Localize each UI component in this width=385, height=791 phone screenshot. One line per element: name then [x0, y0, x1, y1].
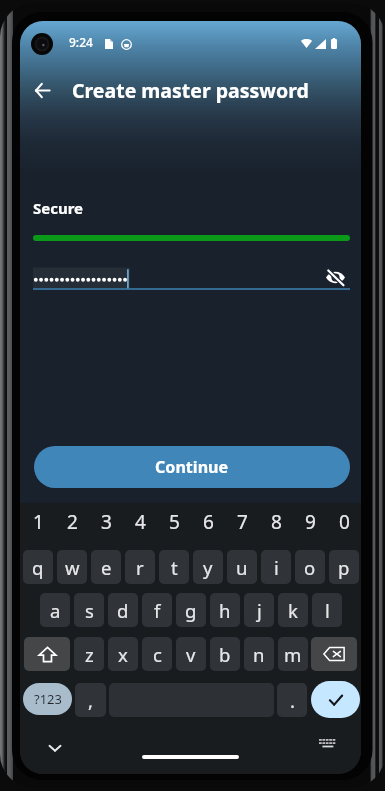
- staticText: p: [338, 555, 350, 580]
- button[interactable]: r: [125, 550, 155, 584]
- button[interactable]: 3: [91, 506, 121, 538]
- button[interactable]: j: [244, 593, 274, 627]
- staticText: q: [32, 555, 44, 580]
- staticText: 4: [135, 509, 146, 535]
- staticText: k: [288, 598, 298, 623]
- staticText: Continue: [155, 456, 229, 478]
- staticText: u: [236, 555, 248, 580]
- button[interactable]: ,: [75, 683, 106, 717]
- staticText: f: [154, 598, 161, 623]
- button[interactable]: 5: [159, 506, 189, 538]
- button[interactable]: Show password: [321, 264, 349, 290]
- staticText: m: [284, 642, 302, 667]
- staticText: 6: [203, 509, 214, 535]
- staticText: Create master password: [72, 77, 309, 104]
- staticText: 8: [271, 509, 282, 535]
- staticText: 3: [101, 509, 112, 535]
- staticText: g: [185, 598, 197, 623]
- staticText: v: [186, 642, 196, 667]
- staticText: 1: [33, 509, 44, 535]
- staticText: z: [85, 642, 94, 667]
- staticText: o: [304, 555, 316, 580]
- button[interactable]: Switch keyboard: [314, 734, 340, 760]
- staticText: i: [274, 555, 279, 580]
- staticText: s: [85, 598, 94, 623]
- button[interactable]: l: [312, 593, 342, 627]
- button[interactable]: 6: [193, 506, 223, 538]
- button[interactable]: 9: [295, 506, 325, 538]
- button[interactable]: d: [108, 593, 138, 627]
- button[interactable]: ?123: [23, 683, 72, 715]
- button[interactable]: Enter: [311, 681, 360, 718]
- button[interactable]: [24, 637, 70, 671]
- staticText: b: [219, 642, 231, 667]
- button[interactable]: q: [23, 550, 53, 584]
- button[interactable]: 8: [261, 506, 291, 538]
- button[interactable]: g: [176, 593, 206, 627]
- staticText: w: [65, 555, 80, 580]
- button[interactable]: u: [227, 550, 257, 584]
- staticText: e: [101, 555, 112, 580]
- button[interactable]: p: [329, 550, 359, 584]
- staticText: Secure: [33, 198, 84, 218]
- staticText: r: [136, 555, 144, 580]
- staticText: h: [219, 598, 231, 623]
- staticText: 9: [305, 509, 316, 535]
- button[interactable]: z: [74, 637, 104, 671]
- staticText: y: [203, 555, 213, 580]
- button[interactable]: 1: [23, 506, 53, 538]
- button[interactable]: i: [261, 550, 291, 584]
- button[interactable]: Back: [24, 72, 60, 108]
- staticText: ,: [88, 688, 93, 713]
- staticText: n: [253, 642, 265, 667]
- staticText: 0: [339, 509, 350, 535]
- button[interactable]: Continue: [34, 446, 350, 488]
- staticText: 9:24: [69, 34, 93, 50]
- button[interactable]: 7: [227, 506, 257, 538]
- button[interactable]: Hide keyboard: [43, 736, 67, 760]
- button[interactable]: v: [176, 637, 206, 671]
- button[interactable]: y: [193, 550, 223, 584]
- staticText: 5: [169, 509, 180, 535]
- staticText: c: [153, 642, 162, 667]
- staticText: 7: [237, 509, 248, 535]
- button[interactable]: 2: [57, 506, 87, 538]
- staticText: ?123: [34, 690, 62, 708]
- staticText: d: [117, 598, 129, 623]
- button[interactable]: n: [244, 637, 274, 671]
- button[interactable]: b: [210, 637, 240, 671]
- button[interactable]: x: [108, 637, 138, 671]
- button[interactable]: o: [295, 550, 325, 584]
- button[interactable]: 4: [125, 506, 155, 538]
- staticText: a: [50, 598, 61, 623]
- button[interactable]: c: [142, 637, 172, 671]
- staticText: j: [257, 598, 262, 623]
- button[interactable]: s: [74, 593, 104, 627]
- button[interactable]: 0: [329, 506, 359, 538]
- staticText: 2: [67, 509, 78, 535]
- staticText: x: [118, 642, 128, 667]
- button[interactable]: [311, 637, 357, 671]
- button[interactable]: w: [57, 550, 87, 584]
- button[interactable]: m: [278, 637, 308, 671]
- staticText: l: [325, 598, 330, 623]
- button[interactable]: t: [159, 550, 189, 584]
- button[interactable]: k: [278, 593, 308, 627]
- button[interactable]: a: [40, 593, 70, 627]
- button[interactable]: h: [210, 593, 240, 627]
- button[interactable]: e: [91, 550, 121, 584]
- button[interactable]: .: [277, 683, 307, 717]
- staticText: t: [171, 555, 178, 580]
- staticText: .: [290, 688, 295, 713]
- button[interactable]: f: [142, 593, 172, 627]
